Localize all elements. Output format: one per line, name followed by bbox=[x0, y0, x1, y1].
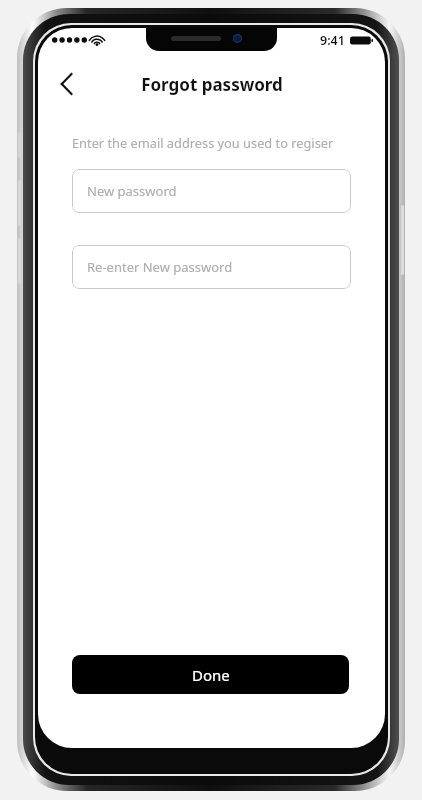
staticText: 9:41 bbox=[320, 32, 345, 49]
staticText: Enter the email address you used to regi… bbox=[72, 134, 334, 151]
staticText: Forgot password bbox=[141, 73, 283, 96]
button[interactable]: New password bbox=[72, 169, 351, 213]
staticText: New password bbox=[87, 182, 177, 200]
staticText: Done bbox=[192, 665, 230, 685]
button[interactable]: Back bbox=[46, 64, 88, 104]
staticText: Re-enter New password bbox=[87, 258, 233, 276]
button[interactable]: Re-enter New password bbox=[72, 245, 351, 289]
button[interactable]: Done bbox=[72, 655, 349, 694]
